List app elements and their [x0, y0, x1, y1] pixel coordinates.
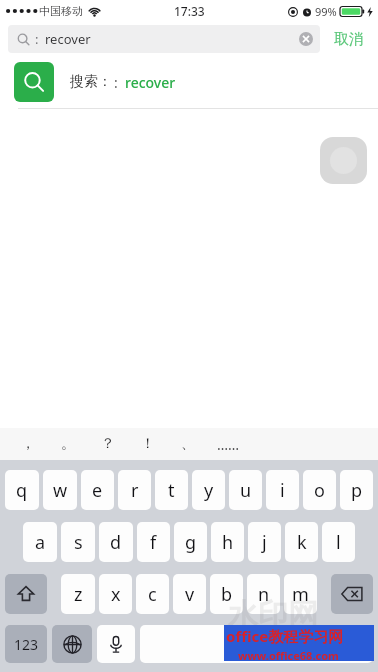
button[interactable]: y — [192, 470, 225, 510]
staticText: j — [262, 530, 267, 555]
button[interactable]: q — [5, 470, 39, 510]
staticText: i — [280, 478, 285, 503]
button[interactable]: h — [211, 522, 244, 562]
button[interactable]: 。 — [48, 428, 88, 460]
button[interactable]: i — [266, 470, 299, 510]
button[interactable]: e — [81, 470, 114, 510]
staticText: 取消 — [334, 30, 364, 49]
button[interactable]: b — [210, 574, 243, 614]
staticText: d — [110, 530, 122, 555]
button[interactable]: ？ — [88, 428, 128, 460]
staticText: t — [168, 478, 175, 503]
button[interactable]: m — [284, 574, 317, 614]
button[interactable]: 搜索： — [0, 56, 378, 108]
button[interactable]: v — [173, 574, 206, 614]
button[interactable]: Switch language — [52, 625, 92, 663]
staticText: …… — [217, 435, 240, 454]
staticText: b — [221, 582, 233, 607]
staticText: 、 — [181, 435, 195, 453]
button[interactable]: z — [61, 574, 95, 614]
button[interactable]: t — [155, 470, 188, 510]
staticText: : — [114, 73, 118, 92]
staticText: a — [35, 530, 46, 555]
button[interactable]: Voice search — [320, 137, 367, 184]
button[interactable]: c — [136, 574, 169, 614]
button[interactable]: w — [43, 470, 77, 510]
staticText: y — [204, 478, 214, 503]
staticText: x — [111, 582, 121, 607]
button[interactable]: r — [118, 470, 151, 510]
button[interactable]: : — [8, 25, 320, 53]
button[interactable]: Backspace — [331, 574, 373, 614]
staticText: s — [74, 530, 83, 555]
staticText: 空格 — [243, 635, 271, 653]
staticText: 水印网 — [228, 596, 318, 634]
button[interactable]: s — [61, 522, 95, 562]
button[interactable]: n — [247, 574, 280, 614]
button[interactable]: j — [248, 522, 281, 562]
staticText: n — [258, 582, 270, 607]
staticText: g — [185, 530, 197, 555]
staticText: w — [53, 478, 68, 503]
staticText: 搜索： — [70, 73, 112, 91]
button[interactable]: p — [340, 470, 373, 510]
staticText: ！ — [141, 435, 155, 453]
staticText: l — [336, 530, 341, 555]
staticText: z — [74, 582, 83, 607]
button[interactable]: …… — [208, 428, 248, 460]
staticText: : — [35, 30, 39, 48]
staticText: r — [131, 478, 139, 503]
staticText: k — [297, 530, 307, 555]
staticText: h — [222, 530, 234, 555]
staticText: 。 — [61, 435, 75, 453]
staticText: 中国移动 — [39, 4, 83, 18]
staticText: e — [92, 478, 103, 503]
button[interactable]: Clear text — [292, 25, 320, 53]
staticText: 123 — [14, 635, 39, 654]
button[interactable]: u — [229, 470, 262, 510]
staticText: recover — [125, 73, 176, 92]
staticText: office教程学习网 — [226, 626, 344, 646]
button[interactable]: o — [303, 470, 336, 510]
button[interactable]: d — [99, 522, 133, 562]
staticText: v — [185, 582, 195, 607]
staticText: q — [16, 478, 28, 503]
staticText: recover — [45, 30, 91, 48]
button[interactable]: 、 — [168, 428, 208, 460]
button[interactable]: ， — [8, 428, 48, 460]
staticText: 99% — [315, 4, 337, 19]
staticText: p — [351, 478, 363, 503]
button[interactable]: 空格 — [140, 625, 373, 663]
staticText: o — [314, 478, 325, 503]
button[interactable]: Voice input — [97, 625, 135, 663]
button[interactable]: l — [322, 522, 355, 562]
button[interactable]: ！ — [128, 428, 168, 460]
button[interactable]: f — [137, 522, 170, 562]
button[interactable]: 123 — [5, 625, 47, 663]
staticText: f — [150, 530, 157, 555]
staticText: m — [292, 582, 309, 607]
button[interactable]: a — [23, 522, 57, 562]
staticText: ， — [21, 435, 35, 453]
staticText: ？ — [101, 435, 115, 453]
button[interactable]: g — [174, 522, 207, 562]
staticText: 17:33 — [174, 3, 205, 19]
staticText: c — [148, 582, 157, 607]
staticText: u — [240, 478, 252, 503]
button[interactable]: Shift — [5, 574, 47, 614]
button[interactable]: x — [99, 574, 132, 614]
button[interactable]: 取消 — [320, 22, 378, 56]
button[interactable]: k — [285, 522, 318, 562]
staticText: www.office68.com — [238, 648, 339, 663]
